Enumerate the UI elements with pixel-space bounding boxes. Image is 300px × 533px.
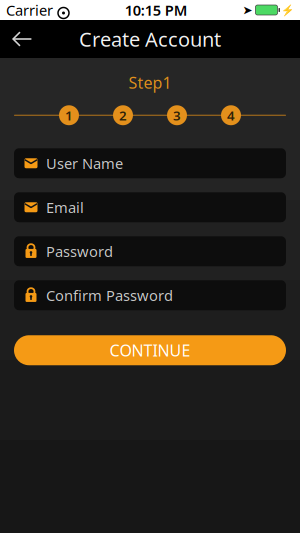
staticText: Create Account [79,26,221,52]
button[interactable]: User Name [14,148,286,178]
staticText: ⚡ [281,4,294,16]
staticText: 2 [119,106,127,124]
staticText: 4 [227,106,235,124]
staticText: Carrier [6,0,53,20]
staticText: Password [46,241,113,261]
staticText: Confirm Password [46,285,173,305]
staticText: 10:15 PM [125,0,188,20]
button[interactable]: CONTINUE [14,335,286,365]
staticText: 1 [65,106,73,124]
staticText: CONTINUE [109,340,190,361]
button[interactable]: Confirm Password [14,280,286,310]
staticText: User Name [46,153,123,173]
button[interactable]: Password [14,236,286,266]
staticText: Step1 [128,72,171,93]
staticText: ➤ [242,3,252,17]
button[interactable]: Back [0,20,44,58]
staticText: Email [46,197,84,217]
staticText: 3 [173,106,181,124]
button[interactable]: Email [14,192,286,222]
